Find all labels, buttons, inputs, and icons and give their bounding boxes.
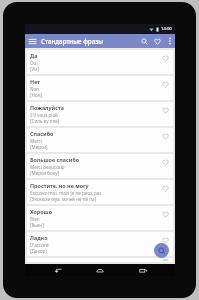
staticText: [Экскюзе муа, мэ жё нё пё па]: [30, 196, 96, 202]
button[interactable]: More options: [164, 34, 175, 48]
button[interactable]: Да: [27, 50, 173, 74]
button[interactable]: Простите, но не могу: [27, 180, 173, 204]
staticText: Спасибо: [30, 130, 54, 137]
button[interactable]: Add to favorites: [159, 156, 171, 168]
button[interactable]: Add to favorites: [159, 52, 171, 64]
button[interactable]: Не знаю: [27, 258, 173, 262]
button[interactable]: Пожалуйста: [27, 102, 173, 126]
staticText: [Нон]: [30, 92, 42, 98]
staticText: Хорошо: [30, 208, 53, 215]
staticText: Ладно: [30, 234, 48, 241]
button[interactable]: Ладно: [27, 232, 173, 256]
staticText: [Дакор]: [30, 248, 47, 254]
button[interactable]: Большое спасибо: [27, 154, 173, 178]
staticText: S'il vous plaît: [30, 112, 58, 118]
staticText: [Мерси боку]: [30, 170, 60, 176]
staticText: [Мерси]: [30, 144, 48, 150]
button[interactable]: Recent apps: [133, 264, 153, 276]
button[interactable]: Home: [90, 264, 110, 276]
button[interactable]: Add to favorites: [159, 78, 171, 90]
staticText: Oui: [30, 60, 38, 66]
button[interactable]: Search phrases: [154, 243, 169, 258]
staticText: Non: [30, 86, 40, 92]
button[interactable]: Search: [138, 34, 151, 48]
button[interactable]: Хорошо: [27, 206, 173, 230]
staticText: [Силь ву пле]: [30, 118, 60, 124]
button[interactable]: Спасибо: [27, 128, 173, 152]
staticText: Большое спасибо: [30, 156, 80, 163]
staticText: Excusez-moi, mais je ne peux pas: [30, 190, 102, 196]
button[interactable]: Add to favorites: [159, 130, 171, 142]
button[interactable]: Нет: [27, 76, 173, 100]
button[interactable]: Add to favorites: [159, 182, 171, 194]
staticText: Пожалуйста: [30, 104, 64, 111]
staticText: Да: [30, 52, 38, 59]
staticText: Bien: [30, 216, 40, 222]
button[interactable]: Add to favorites: [159, 104, 171, 116]
staticText: Нет: [30, 78, 40, 85]
staticText: Стандартные фразы: [41, 37, 104, 45]
button[interactable]: Add to favorites: [159, 234, 171, 246]
button[interactable]: Back: [48, 264, 68, 276]
staticText: Merci: [30, 138, 42, 144]
staticText: [Уи]: [30, 66, 39, 72]
staticText: Простите, но не могу: [30, 182, 89, 189]
staticText: [Бьен]: [30, 222, 44, 228]
button[interactable]: Open navigation drawer: [25, 34, 39, 48]
staticText: 14:00: [161, 26, 172, 32]
staticText: D'accord: [30, 242, 49, 248]
staticText: Merci beaucoup: [30, 164, 65, 170]
button[interactable]: Favorites: [151, 34, 164, 48]
button[interactable]: Add to favorites: [159, 208, 171, 220]
